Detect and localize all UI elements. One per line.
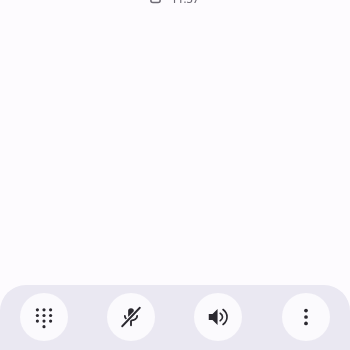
button[interactable]: Speaker	[194, 293, 242, 341]
staticText: 11:37	[171, 0, 200, 6]
button[interactable]: Mute microphone	[107, 293, 155, 341]
button[interactable]: More options	[282, 293, 330, 341]
button[interactable]: Dialpad	[20, 293, 68, 341]
button[interactable]: Call duration	[150, 0, 200, 6]
